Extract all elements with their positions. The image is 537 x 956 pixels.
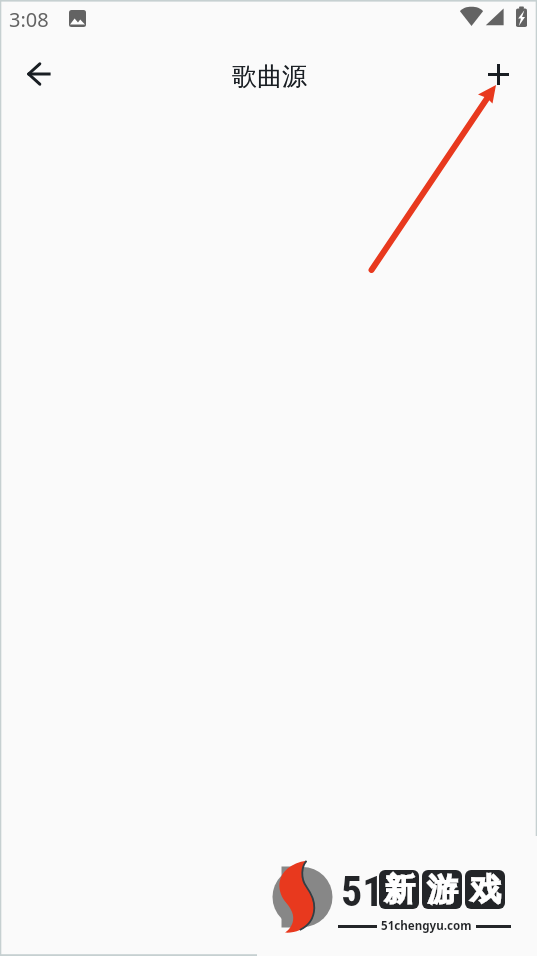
staticText: 新 <box>384 870 415 909</box>
staticText: 歌曲源 <box>232 61 307 92</box>
staticText: 游 <box>427 870 458 909</box>
staticText: 51 <box>341 867 384 916</box>
staticText: 51chengyu.com <box>381 918 472 934</box>
staticText: 3:08 <box>9 6 49 33</box>
button[interactable]: Add <box>474 50 522 98</box>
staticText: 戏 <box>470 870 501 909</box>
staticText: 歌曲源 <box>232 61 307 92</box>
button[interactable]: Back <box>15 50 63 98</box>
